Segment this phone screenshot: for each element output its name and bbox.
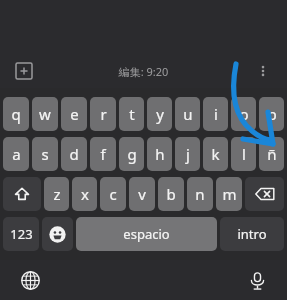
button[interactable]: l bbox=[231, 137, 256, 171]
staticText: intro bbox=[237, 225, 267, 243]
staticText: i bbox=[214, 104, 218, 124]
button[interactable]: p bbox=[259, 97, 284, 131]
staticText: l bbox=[242, 144, 246, 164]
staticText: t bbox=[129, 104, 135, 124]
staticText: u bbox=[183, 104, 193, 124]
button[interactable]: n bbox=[187, 177, 213, 211]
button[interactable]: espacio bbox=[76, 217, 217, 251]
button[interactable]: j bbox=[175, 137, 200, 171]
button[interactable]: a bbox=[3, 137, 29, 171]
button[interactable]: ñ bbox=[259, 137, 284, 171]
button[interactable]: Emoji bbox=[42, 217, 73, 251]
staticText: c bbox=[109, 184, 117, 204]
staticText: q bbox=[11, 104, 21, 124]
button[interactable]: q bbox=[3, 97, 29, 131]
button[interactable]: w bbox=[32, 97, 58, 131]
button[interactable]: Voice input bbox=[243, 266, 271, 294]
button[interactable]: f bbox=[90, 137, 116, 171]
button[interactable]: m bbox=[216, 177, 242, 211]
button[interactable]: Add bbox=[10, 57, 38, 85]
staticText: w bbox=[39, 104, 51, 124]
button[interactable]: s bbox=[32, 137, 58, 171]
staticText: f bbox=[100, 144, 106, 164]
staticText: y bbox=[156, 104, 164, 124]
button[interactable]: k bbox=[203, 137, 228, 171]
button[interactable]: o bbox=[231, 97, 256, 131]
staticText: k bbox=[211, 144, 220, 164]
staticText: h bbox=[155, 144, 165, 164]
staticText: a bbox=[12, 144, 21, 164]
staticText: z bbox=[53, 184, 61, 204]
button[interactable]: r bbox=[90, 97, 116, 131]
button[interactable]: c bbox=[100, 177, 126, 211]
staticText: 編集: 9:20 bbox=[44, 64, 243, 79]
button[interactable]: e bbox=[61, 97, 87, 131]
staticText: r bbox=[100, 104, 107, 124]
staticText: o bbox=[239, 104, 249, 124]
button[interactable]: z bbox=[44, 177, 69, 211]
button[interactable]: 123 bbox=[3, 217, 39, 251]
button[interactable]: g bbox=[119, 137, 144, 171]
button[interactable]: More options bbox=[249, 57, 277, 85]
button[interactable]: intro bbox=[220, 217, 284, 251]
staticText: v bbox=[138, 184, 146, 204]
staticText: ñ bbox=[267, 144, 277, 164]
staticText: x bbox=[81, 184, 89, 204]
staticText: n bbox=[195, 184, 205, 204]
staticText: e bbox=[70, 104, 79, 124]
staticText: 123 bbox=[10, 225, 33, 243]
button[interactable]: Shift bbox=[3, 177, 41, 211]
button[interactable]: x bbox=[72, 177, 97, 211]
button[interactable]: i bbox=[203, 97, 228, 131]
staticText: b bbox=[166, 184, 176, 204]
staticText: espacio bbox=[123, 225, 170, 243]
button[interactable]: Backspace bbox=[245, 177, 284, 211]
button[interactable]: y bbox=[147, 97, 172, 131]
button[interactable]: t bbox=[119, 97, 144, 131]
staticText: d bbox=[69, 144, 79, 164]
staticText: g bbox=[127, 144, 137, 164]
staticText: p bbox=[267, 104, 277, 124]
button[interactable]: Change language bbox=[16, 266, 44, 294]
button[interactable]: h bbox=[147, 137, 172, 171]
button[interactable]: u bbox=[175, 97, 200, 131]
button[interactable]: d bbox=[61, 137, 87, 171]
staticText: m bbox=[222, 184, 237, 204]
button[interactable]: b bbox=[158, 177, 184, 211]
button[interactable]: v bbox=[129, 177, 155, 211]
staticText: s bbox=[41, 144, 49, 164]
staticText: j bbox=[186, 144, 190, 164]
